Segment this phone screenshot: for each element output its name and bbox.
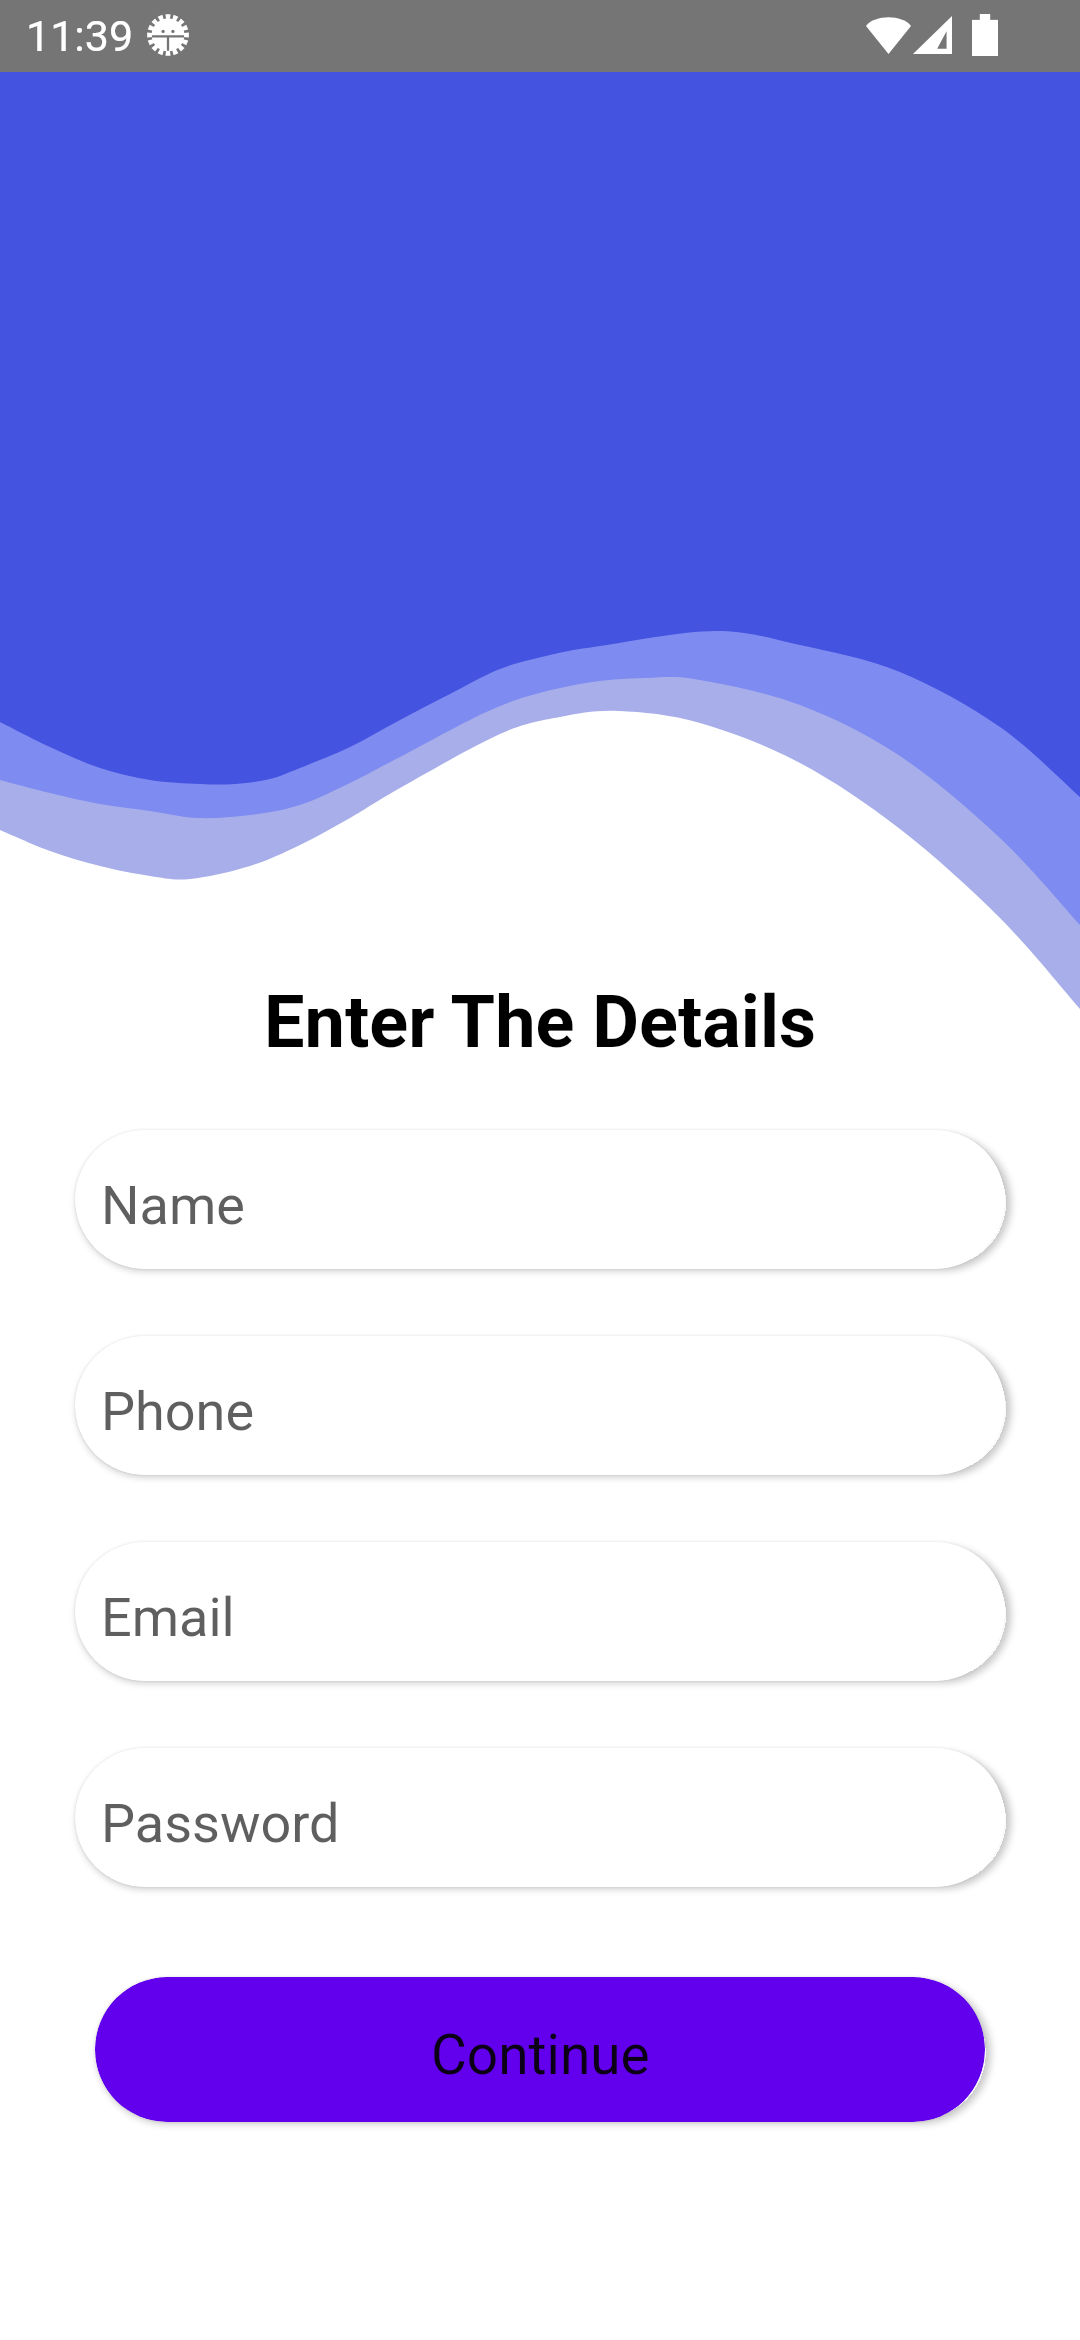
staticText: Password (101, 1792, 340, 1855)
other: Developer options (147, 14, 189, 56)
staticText: Email (101, 1586, 235, 1649)
button[interactable]: Password (75, 1748, 1005, 1887)
staticText: Continue (431, 2023, 650, 2087)
button[interactable]: Phone (75, 1336, 1005, 1475)
button[interactable]: Email (75, 1542, 1005, 1681)
button[interactable]: Name (75, 1130, 1005, 1269)
staticText: Phone (101, 1380, 255, 1443)
button[interactable]: Continue (95, 1977, 985, 2122)
staticText: 11:39 (26, 11, 134, 61)
staticText: Name (101, 1174, 245, 1237)
staticText: Enter The Details (0, 980, 1080, 1064)
